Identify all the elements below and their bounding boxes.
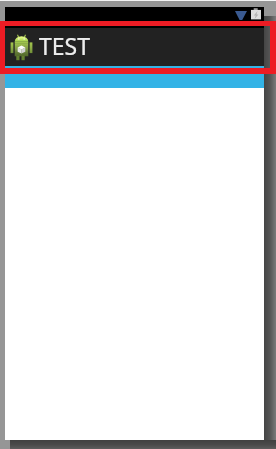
other: Battery charging [251, 8, 261, 20]
button[interactable]: TEST [5, 28, 264, 66]
other: Wi-Fi signal [235, 11, 247, 20]
staticText: TEST [39, 30, 90, 61]
